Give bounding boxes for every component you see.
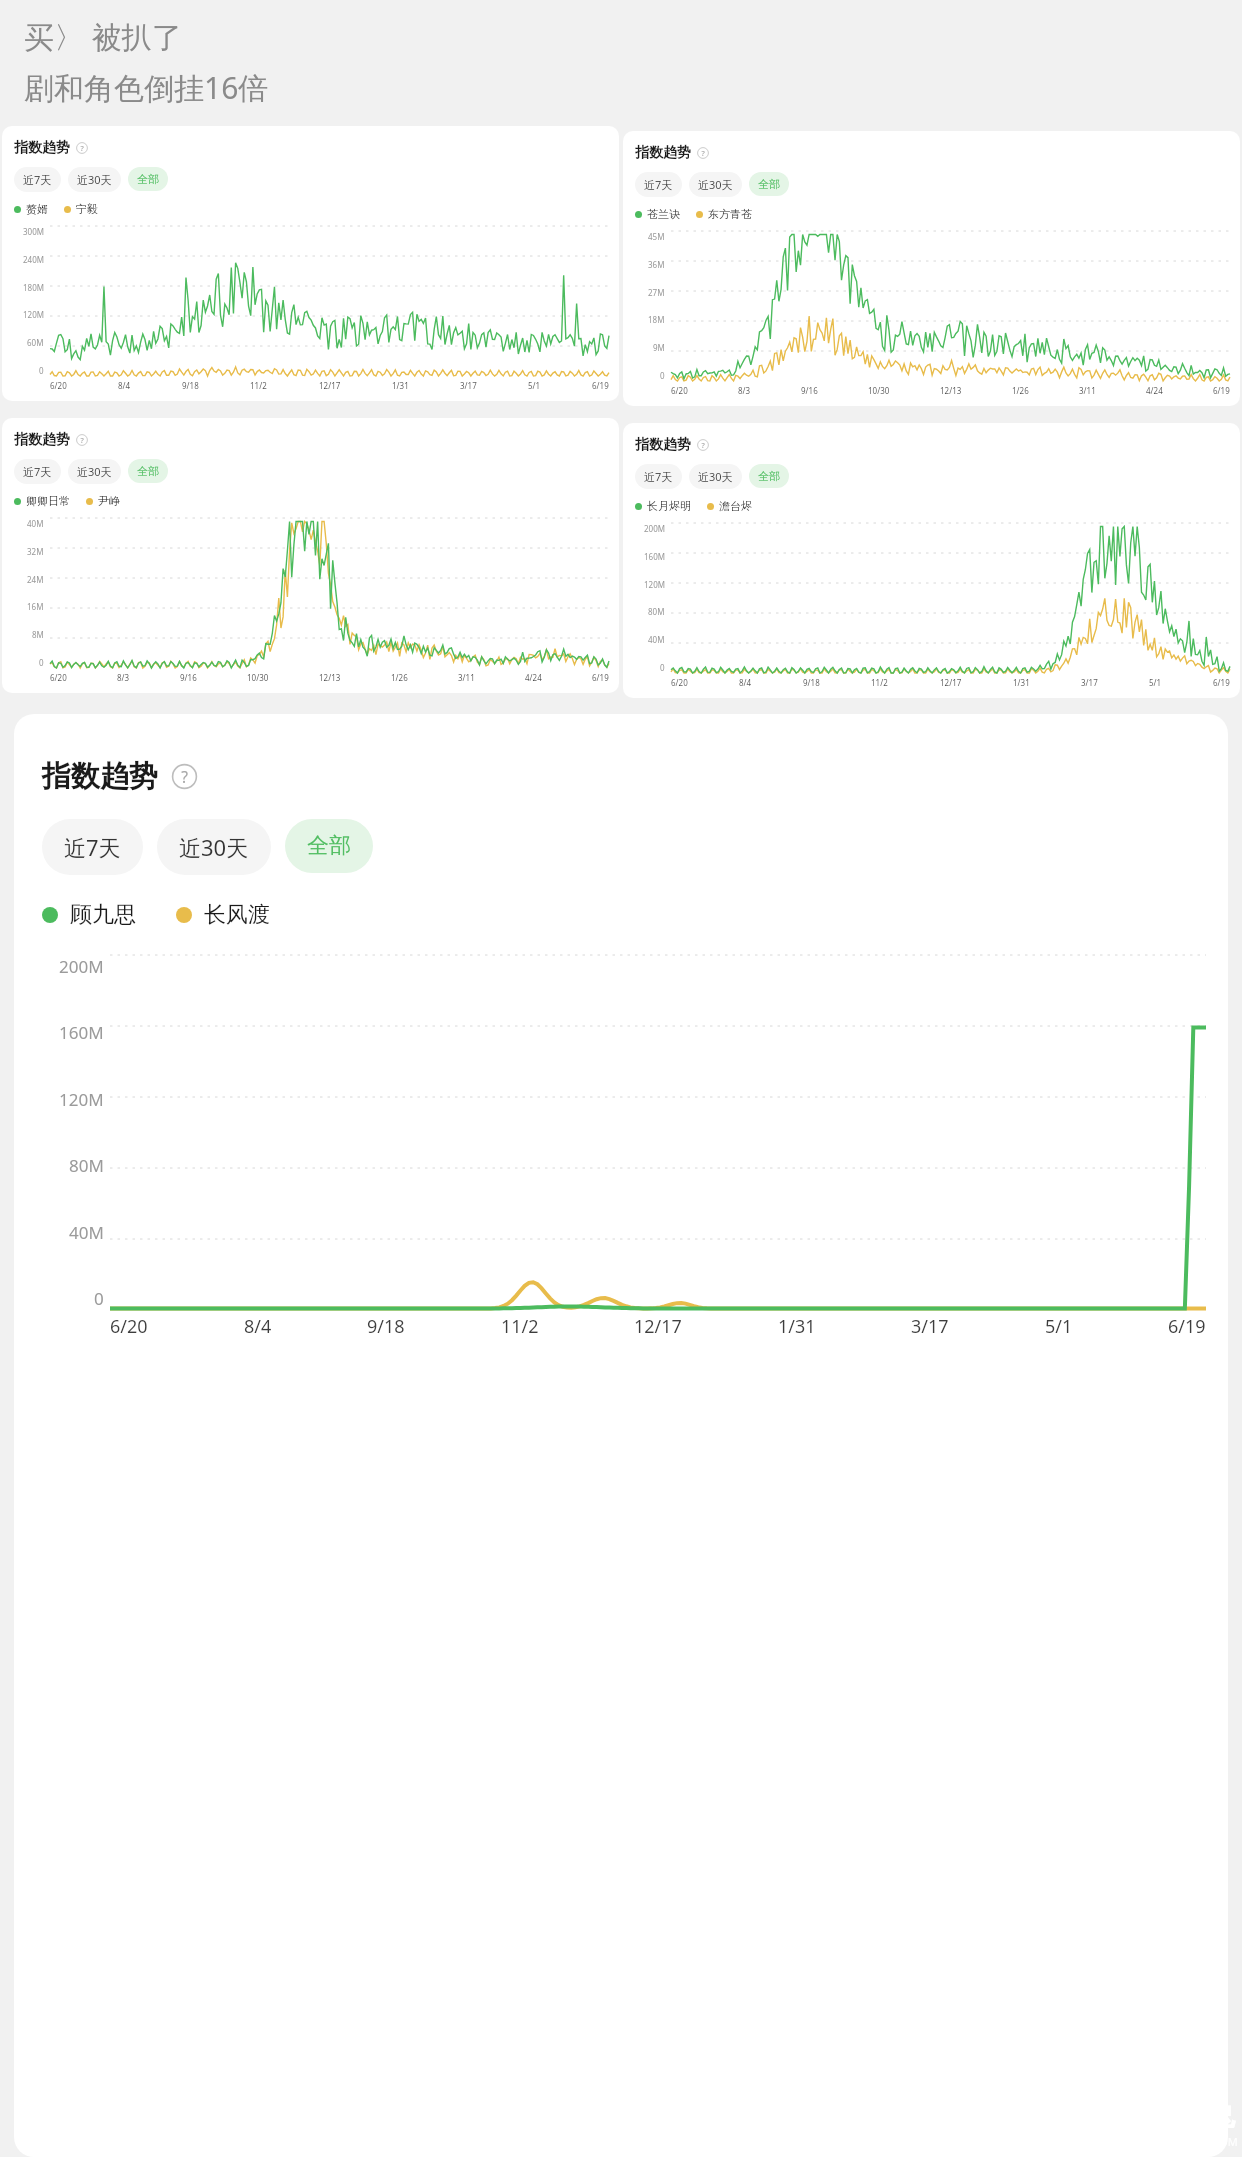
staticText: 160M (59, 1021, 104, 1044)
button[interactable]: 全部 (749, 464, 789, 488)
staticText: 80M (648, 606, 665, 617)
staticText: 1/26 (1012, 385, 1029, 396)
staticText: 指数趋势 (42, 758, 158, 795)
staticText: 全部 (137, 464, 159, 478)
button[interactable]: 指数趋势 (14, 714, 1228, 2157)
staticText: 6/19 (1168, 1314, 1206, 1339)
staticText: 3/17 (460, 380, 477, 391)
staticText: 8/3 (117, 672, 130, 683)
staticText: 近7天 (23, 172, 52, 187)
button[interactable]: 近30天 (157, 819, 271, 875)
button[interactable]: 全部 (749, 172, 789, 196)
staticText: 9/16 (180, 672, 197, 683)
staticText: 6/20 (671, 677, 688, 688)
staticText: 近7天 (644, 469, 673, 484)
staticText: 10/30 (247, 672, 269, 683)
staticText: 11/2 (501, 1314, 539, 1339)
staticText: 0 (94, 1287, 104, 1310)
staticText: 全部 (307, 832, 351, 860)
staticText: 8/4 (739, 677, 752, 688)
staticText: 3/11 (1079, 385, 1096, 396)
staticText: 近30天 (698, 469, 733, 484)
button[interactable]: Help (76, 434, 88, 446)
staticText: 0 (660, 370, 665, 381)
staticText: 9/16 (801, 385, 818, 396)
button[interactable]: 近7天 (14, 459, 61, 484)
staticText: 苍兰诀 (647, 207, 680, 221)
staticText: 1/26 (391, 672, 408, 683)
button[interactable]: 近30天 (689, 464, 742, 489)
button[interactable]: 全部 (285, 819, 373, 873)
staticText: 指数趋势 (14, 139, 70, 157)
staticText: 40M (27, 518, 44, 529)
staticText: ? (701, 440, 705, 450)
staticText: 160M (644, 551, 665, 562)
staticText: 40M (69, 1221, 104, 1244)
staticText: 9/18 (182, 380, 199, 391)
staticText: 4/24 (1146, 385, 1163, 396)
staticText: 200M (644, 523, 665, 534)
button[interactable]: 指数趋势 (2, 126, 619, 401)
staticText: 8/3 (738, 385, 751, 396)
staticText: 120M (644, 579, 665, 590)
staticText: ? (80, 435, 84, 445)
staticText: 3/11 (458, 672, 475, 683)
staticText: 指数趋势 (14, 431, 70, 449)
button[interactable]: 近30天 (68, 167, 121, 192)
button[interactable]: 指数趋势 (623, 423, 1240, 698)
staticText: 3/17 (911, 1314, 949, 1339)
staticText: 0 (39, 365, 44, 376)
staticText: 剧和角色倒挂16倍 (24, 67, 269, 108)
staticText: 8/4 (118, 380, 131, 391)
button[interactable]: 近30天 (689, 172, 742, 197)
staticText: 8/4 (244, 1314, 272, 1339)
staticText: 45M (648, 231, 665, 242)
staticText: 近30天 (698, 177, 733, 192)
staticText: 24M (27, 574, 44, 585)
button[interactable]: Help (76, 142, 88, 154)
staticText: 12/17 (634, 1314, 682, 1339)
staticText: 6/20 (50, 380, 67, 391)
button[interactable]: Help (172, 764, 197, 789)
staticText: 1/31 (392, 380, 409, 391)
button[interactable]: 全部 (128, 167, 168, 191)
staticText: 1/31 (778, 1314, 816, 1339)
staticText: 6/20 (110, 1314, 148, 1339)
staticText: ? (701, 148, 705, 158)
button[interactable]: 指数趋势 (2, 418, 619, 693)
button[interactable]: 近7天 (42, 819, 143, 875)
staticText: 近7天 (23, 464, 52, 479)
staticText: 6/20 (50, 672, 67, 683)
staticText: 32M (27, 546, 44, 557)
button[interactable]: 近7天 (635, 464, 682, 489)
button[interactable]: 指数趋势 (623, 131, 1240, 406)
button[interactable]: Help (697, 439, 709, 451)
staticText: 8M (32, 629, 44, 640)
staticText: 全部 (137, 172, 159, 186)
staticText: 近30天 (77, 172, 112, 187)
staticText: 5/1 (1149, 677, 1162, 688)
button[interactable]: 全部 (128, 459, 168, 483)
staticText: 200M (59, 955, 104, 978)
staticText: 全部 (758, 469, 780, 483)
staticText: 卿卿日常 (26, 494, 70, 508)
staticText: 9/18 (367, 1314, 405, 1339)
button[interactable]: 近7天 (14, 167, 61, 192)
staticText: 近30天 (77, 464, 112, 479)
button[interactable]: 近30天 (68, 459, 121, 484)
staticText: 12/17 (940, 677, 962, 688)
button[interactable]: 近7天 (635, 172, 682, 197)
staticText: 1/31 (1013, 677, 1030, 688)
button[interactable]: Help (697, 147, 709, 159)
staticText: 12/13 (940, 385, 962, 396)
staticText: 6/19 (592, 380, 609, 391)
staticText: 近7天 (644, 177, 673, 192)
staticText: 指数趋势 (635, 436, 691, 454)
staticText: 9/18 (803, 677, 820, 688)
staticText: 10/30 (868, 385, 890, 396)
staticText: WWW.YUEGONGYUTU.COM (1096, 2134, 1238, 2149)
staticText: 澹台烬 (719, 499, 752, 513)
staticText: 80M (69, 1154, 104, 1177)
staticText: 近7天 (64, 832, 121, 862)
staticText: 18M (648, 314, 665, 325)
